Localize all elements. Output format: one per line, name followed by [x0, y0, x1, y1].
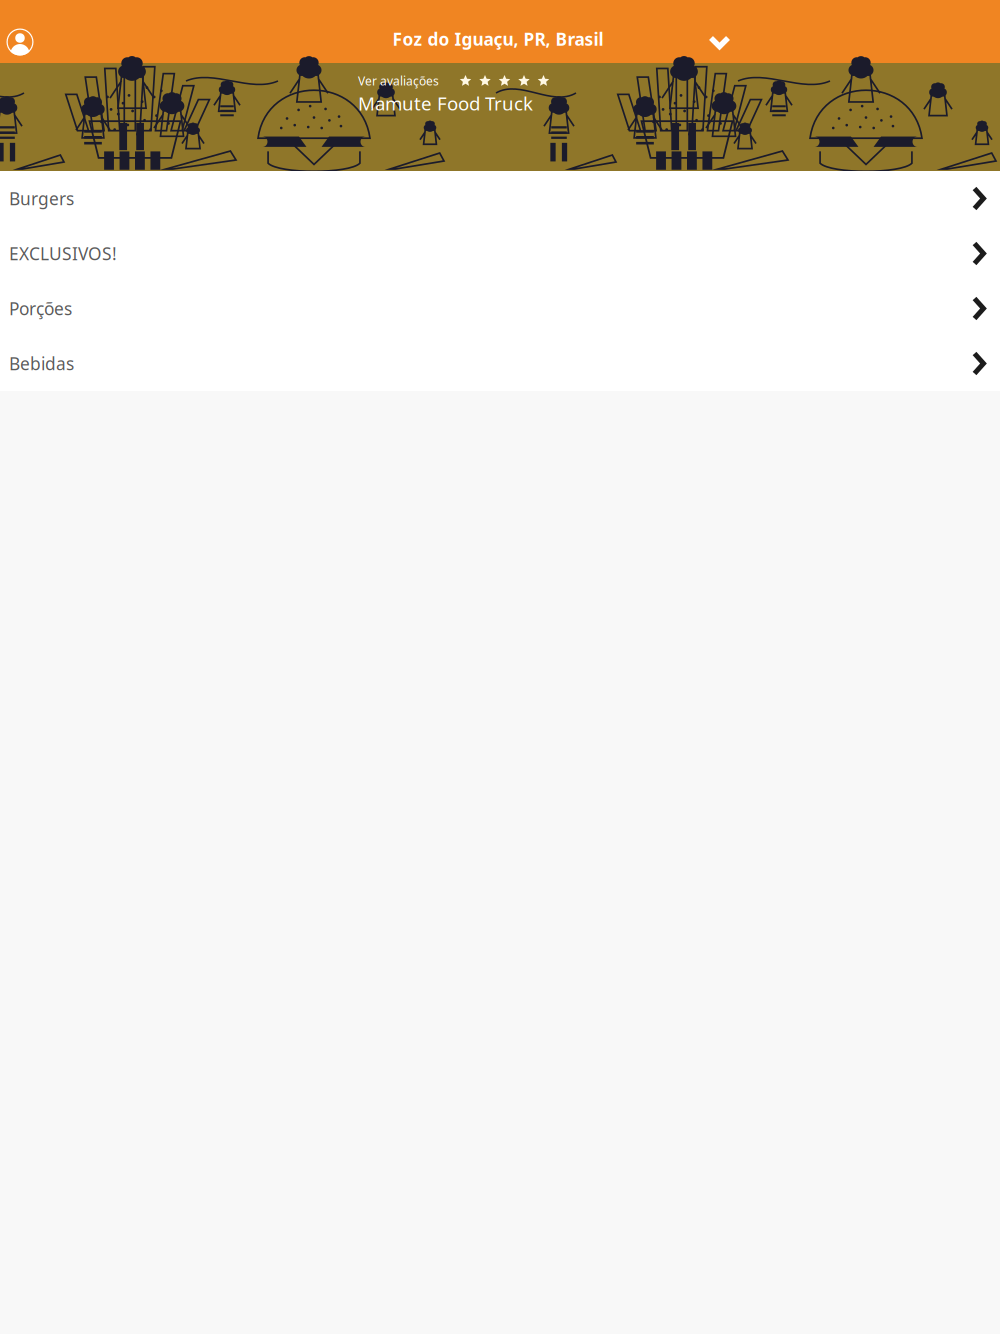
button[interactable]: Account [0, 22, 40, 62]
staticText: Ver avaliações [358, 73, 439, 89]
button[interactable]: Foz do Iguaçu, PR, Brasil [288, 17, 708, 61]
staticText: EXCLUSIVOS! [9, 242, 117, 265]
button[interactable]: Change location [698, 25, 741, 59]
button[interactable]: Burgers [0, 171, 1000, 226]
button[interactable]: Porções [0, 281, 1000, 336]
button[interactable]: Bebidas [0, 336, 1000, 391]
staticText: Foz do Iguaçu, PR, Brasil [392, 27, 603, 50]
staticText: Porções [9, 297, 72, 320]
button[interactable]: EXCLUSIVOS! [0, 226, 1000, 281]
staticText: Bebidas [9, 352, 74, 375]
staticText: Mamute Food Truck [358, 91, 533, 116]
staticText: Burgers [9, 187, 74, 210]
